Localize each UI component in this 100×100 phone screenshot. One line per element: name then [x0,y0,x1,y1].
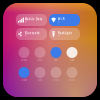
staticText: Record [69,79,75,81]
staticText: On [25,35,27,37]
staticText: Camera [37,59,43,61]
button[interactable]: Wi-Fi [49,14,80,26]
button[interactable]: Location [16,67,32,81]
button[interactable]: Screen [48,67,64,81]
staticText: Flashlight [58,31,72,35]
button[interactable]: Home [32,67,48,81]
staticText: Calculator [20,59,27,61]
button[interactable]: Timer [48,47,64,61]
button[interactable]: Record [64,67,80,81]
staticText: Home [38,79,42,81]
staticText: On [58,21,60,23]
button[interactable]: Flashlight [49,28,80,40]
button[interactable]: Bluetooth [16,28,47,40]
button[interactable]: Remote [64,47,80,61]
staticText: Location [21,79,27,81]
button[interactable]: Camera [32,47,48,61]
staticText: Off [25,21,27,23]
staticText: Mobile Data [25,17,43,21]
staticText: Wi-Fi [58,17,65,21]
staticText: Off [58,35,60,37]
staticText: Screen [53,79,59,81]
staticText: Timer [54,59,58,61]
button[interactable]: Calculator [16,47,32,61]
staticText: Remote [69,59,74,61]
staticText: Bluetooth [25,31,40,35]
button[interactable]: Mobile Data [16,14,47,26]
